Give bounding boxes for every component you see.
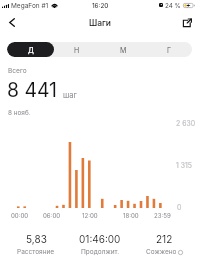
staticText: 212 bbox=[156, 233, 173, 245]
staticText: 18:00 bbox=[123, 212, 139, 219]
staticText: 2 630 bbox=[176, 119, 196, 127]
staticText: Всего bbox=[8, 67, 27, 75]
button[interactable]: Н bbox=[54, 42, 100, 57]
staticText: 0 bbox=[177, 203, 182, 211]
staticText: 16:20 bbox=[92, 2, 109, 10]
staticText: 24 % bbox=[165, 2, 181, 10]
staticText: Шаги bbox=[89, 18, 112, 28]
staticText: 06:00 bbox=[43, 212, 61, 219]
button[interactable]: М bbox=[100, 42, 146, 57]
staticText: 5,83 bbox=[26, 233, 47, 245]
staticText: Д bbox=[28, 46, 34, 54]
staticText: Н bbox=[74, 46, 80, 54]
button[interactable]: 5,83 bbox=[4, 233, 68, 256]
staticText: 1 315 bbox=[176, 161, 192, 169]
staticText: Г bbox=[167, 46, 172, 54]
staticText: 00:00 bbox=[11, 212, 29, 219]
button[interactable]: 01:46:00 bbox=[68, 233, 132, 256]
staticText: Расстояние bbox=[17, 248, 55, 256]
staticText: 23:59 bbox=[154, 212, 171, 219]
button[interactable]: Back bbox=[2, 14, 21, 33]
staticText: М bbox=[120, 46, 127, 54]
staticText: MegaFon #1 bbox=[11, 2, 49, 10]
button[interactable]: Г bbox=[146, 42, 192, 57]
staticText: 01:46:00 bbox=[79, 233, 121, 245]
button[interactable]: Д bbox=[7, 42, 54, 57]
staticText: Сожжено bbox=[146, 248, 177, 256]
staticText: 8 441 bbox=[7, 78, 58, 101]
staticText: 8 нояб. bbox=[8, 109, 31, 117]
button[interactable]: Share bbox=[178, 14, 197, 33]
staticText: Продолжит. bbox=[81, 248, 120, 256]
staticText: 12:00 bbox=[82, 212, 98, 219]
button[interactable]: 212 bbox=[132, 233, 196, 256]
staticText: шаг bbox=[63, 91, 77, 100]
